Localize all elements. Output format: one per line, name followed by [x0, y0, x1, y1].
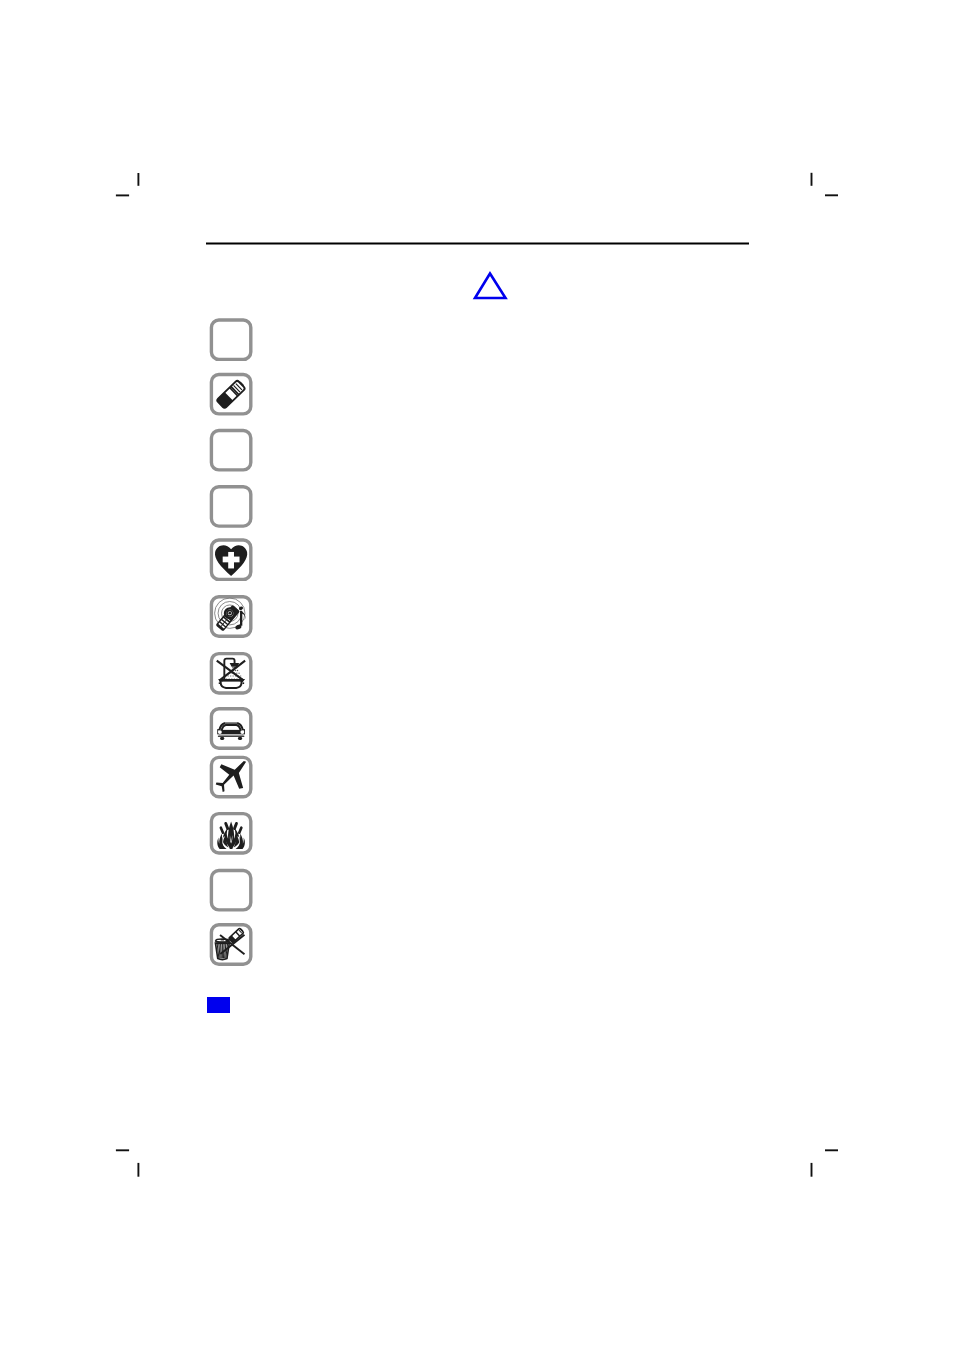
- button[interactable]: Do not dispose of with household waste: [210, 923, 253, 966]
- button[interactable]: Keep away from fire: [210, 812, 253, 855]
- button[interactable]: Do not use while driving: [210, 707, 253, 750]
- button[interactable]: Switch off in aircraft: [210, 756, 253, 799]
- button[interactable]: Safety note: [210, 869, 253, 912]
- button[interactable]: Use approved batteries only: [210, 373, 253, 416]
- button[interactable]: Safety note: [210, 318, 253, 361]
- button[interactable]: Safety note: [210, 485, 253, 528]
- button[interactable]: Keep away from medical equipment: [210, 538, 253, 581]
- button[interactable]: Do not expose to water: [210, 652, 253, 695]
- button[interactable]: Ringtone and hands-free warning: [210, 595, 253, 638]
- button[interactable]: Safety note: [210, 429, 253, 472]
